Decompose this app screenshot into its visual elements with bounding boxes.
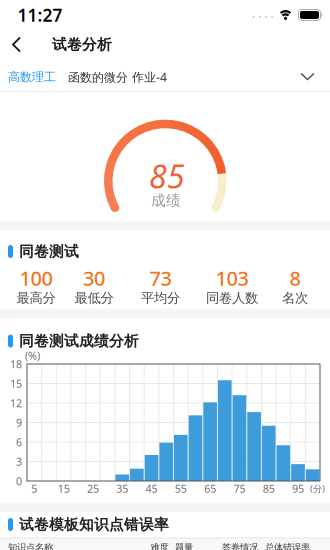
staticText: 同卷人数 — [206, 290, 258, 306]
staticText: 18 — [10, 357, 22, 371]
staticText: 73 — [149, 265, 171, 291]
staticText: 答卷情况 — [222, 542, 258, 550]
staticText: 9 — [16, 415, 22, 430]
staticText: 知识点名称 — [8, 542, 53, 550]
staticText: 同卷测试 — [19, 242, 79, 260]
staticText: 45 — [145, 481, 157, 496]
staticText: 100 — [19, 265, 52, 291]
staticText: 30 — [83, 265, 105, 291]
button[interactable]: 返回 — [2, 29, 32, 59]
staticText: 0 — [16, 474, 22, 488]
staticText: 55 — [175, 481, 187, 496]
staticText: 95 — [292, 481, 304, 496]
staticText: 8 — [289, 265, 300, 291]
staticText: 最低分 — [74, 290, 113, 306]
staticText: 同卷测试成绩分析 — [19, 332, 139, 350]
staticText: 5 — [31, 481, 37, 496]
staticText: 25 — [87, 481, 99, 496]
staticText: 11:27 — [17, 3, 62, 26]
staticText: 成绩 — [151, 191, 181, 209]
staticText: 103 — [215, 265, 248, 291]
staticText: 12 — [10, 396, 22, 410]
staticText: 高数理工 — [8, 70, 56, 84]
staticText: 试卷分析 — [52, 35, 112, 53]
staticText: 名次 — [282, 290, 308, 306]
button[interactable]: 高数理工 — [0, 59, 330, 91]
staticText: (分) — [310, 482, 325, 495]
staticText: 15 — [58, 481, 70, 496]
staticText: 6 — [16, 435, 22, 449]
staticText: 85 — [263, 481, 275, 496]
staticText: 函数的微分 作业-4 — [68, 69, 167, 85]
staticText: 15 — [10, 376, 22, 391]
staticText: (%) — [25, 348, 40, 363]
staticText: 题量 — [175, 542, 193, 550]
staticText: 最高分 — [16, 290, 55, 306]
staticText: 3 — [16, 454, 22, 469]
staticText: 65 — [204, 481, 216, 496]
staticText: 85 — [149, 155, 185, 197]
staticText: 总体错误率 — [265, 542, 310, 550]
staticText: 75 — [233, 481, 245, 496]
staticText: 35 — [116, 481, 128, 496]
staticText: 平均分 — [141, 290, 180, 306]
staticText: 难度 — [150, 542, 168, 550]
staticText: 试卷模板知识点错误率 — [19, 515, 169, 533]
